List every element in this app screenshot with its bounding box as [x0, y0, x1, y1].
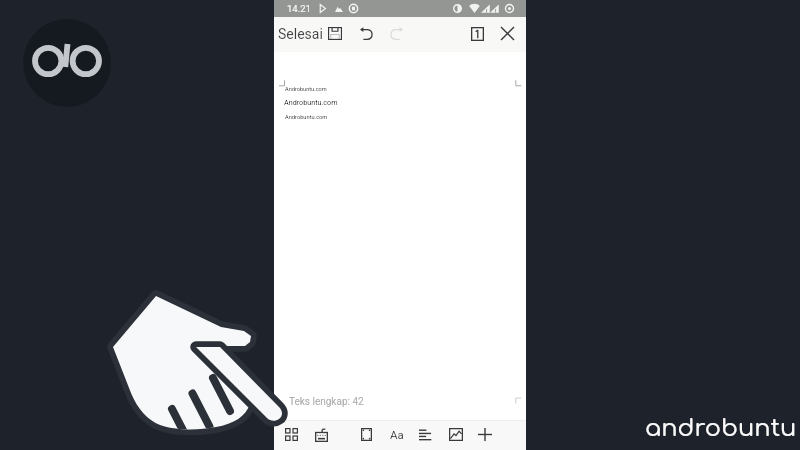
staticText: 14.21 — [287, 3, 311, 14]
button[interactable]: Font — [389, 427, 404, 441]
button[interactable]: Redo — [390, 27, 403, 40]
staticText: Androbuntu.com — [284, 98, 338, 106]
button[interactable]: Save — [328, 27, 342, 40]
button[interactable]: Androbuntu logo — [23, 19, 111, 107]
staticText: Androbuntu.com — [285, 114, 328, 121]
staticText: Androbuntu.com — [285, 86, 327, 93]
button[interactable]: Page setup — [361, 428, 372, 441]
button[interactable]: Keyboard — [315, 428, 328, 442]
button[interactable]: Insert image — [449, 428, 463, 441]
button[interactable]: Undo — [360, 27, 373, 40]
staticText: Aa — [390, 428, 404, 441]
staticText: androbuntu — [645, 415, 797, 442]
button[interactable]: Selesai — [276, 23, 325, 45]
button[interactable]: Close — [501, 27, 514, 40]
button[interactable]: Apps — [285, 428, 298, 441]
button[interactable]: Add — [478, 428, 492, 441]
staticText: Teks lengkap: 42 — [289, 396, 364, 408]
button[interactable]: Paragraph — [419, 429, 432, 441]
staticText: Selesai — [278, 26, 323, 42]
button[interactable]: Page count — [471, 27, 484, 41]
